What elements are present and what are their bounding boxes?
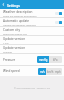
staticText: km/h xyxy=(47,70,54,74)
staticText: Automatic update xyxy=(3,19,30,23)
button[interactable]: Update version xyxy=(0,45,64,53)
staticText: Show the weather description xyxy=(3,14,37,17)
staticText: 1.0.0 xyxy=(3,41,9,44)
staticText: Update version xyxy=(3,37,26,41)
button[interactable]: Update version xyxy=(0,36,64,44)
staticText: Custom city xyxy=(3,28,21,32)
button[interactable]: mph xyxy=(54,68,62,75)
button[interactable]: Toggle xyxy=(54,10,62,16)
staticText: Pressure xyxy=(3,58,16,62)
button[interactable]: Pressure xyxy=(0,54,64,65)
staticText: Wind speed xyxy=(3,69,20,73)
button[interactable]: mmHg xyxy=(37,56,49,63)
staticText: Update version xyxy=(3,46,26,50)
staticText: © 2024 Weather Ltd. Version 1.0.0 xyxy=(14,87,51,90)
staticText: Weather description xyxy=(3,10,33,14)
button[interactable]: Toggle xyxy=(54,19,62,25)
staticText: Settings xyxy=(7,3,20,7)
staticText: kPa xyxy=(53,58,58,62)
staticText: mmHg xyxy=(39,58,48,62)
button[interactable]: m/s xyxy=(38,68,46,75)
button[interactable]: Weather description xyxy=(0,9,64,17)
button[interactable]: Wind speed xyxy=(0,66,64,76)
button[interactable]: Custom city xyxy=(0,27,64,35)
button[interactable]: Automatic update xyxy=(0,18,64,26)
button[interactable]: kPa xyxy=(49,56,62,63)
staticText: mph xyxy=(55,70,61,74)
staticText: Select the display city xyxy=(3,32,27,35)
button[interactable]: Back xyxy=(0,0,7,9)
button[interactable]: km/h xyxy=(46,68,54,75)
staticText: m/s xyxy=(40,70,45,74)
staticText: Update the weather regularly xyxy=(3,23,37,26)
staticText: Chinese xyxy=(3,50,12,53)
